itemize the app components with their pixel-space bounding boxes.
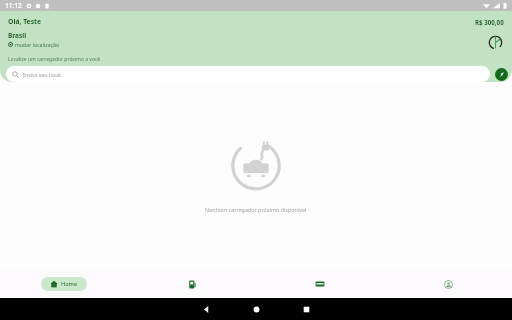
- staticText: Nenhum carregador próximo disponível: [205, 206, 307, 213]
- staticText: Insira seu local: [23, 71, 61, 78]
- button[interactable]: Insira seu local: [6, 66, 490, 82]
- button[interactable]: Home: [41, 277, 87, 291]
- staticText: mudar localização: [15, 41, 60, 48]
- button[interactable]: Carteira: [256, 270, 384, 298]
- button[interactable]: Brasil: [8, 31, 60, 48]
- button[interactable]: Carregando: [484, 31, 506, 53]
- staticText: Olá, Teste: [8, 17, 42, 26]
- staticText: Home: [61, 280, 78, 288]
- staticText: 11:12: [5, 1, 22, 10]
- staticText: Localize um carregador próximo a você: [8, 56, 101, 63]
- staticText: R$ 300,00: [475, 18, 504, 26]
- button[interactable]: Usar minha localização: [495, 68, 508, 81]
- button[interactable]: Perfil: [384, 270, 512, 298]
- staticText: Brasil: [8, 31, 27, 40]
- button[interactable]: Carregadores: [128, 270, 256, 298]
